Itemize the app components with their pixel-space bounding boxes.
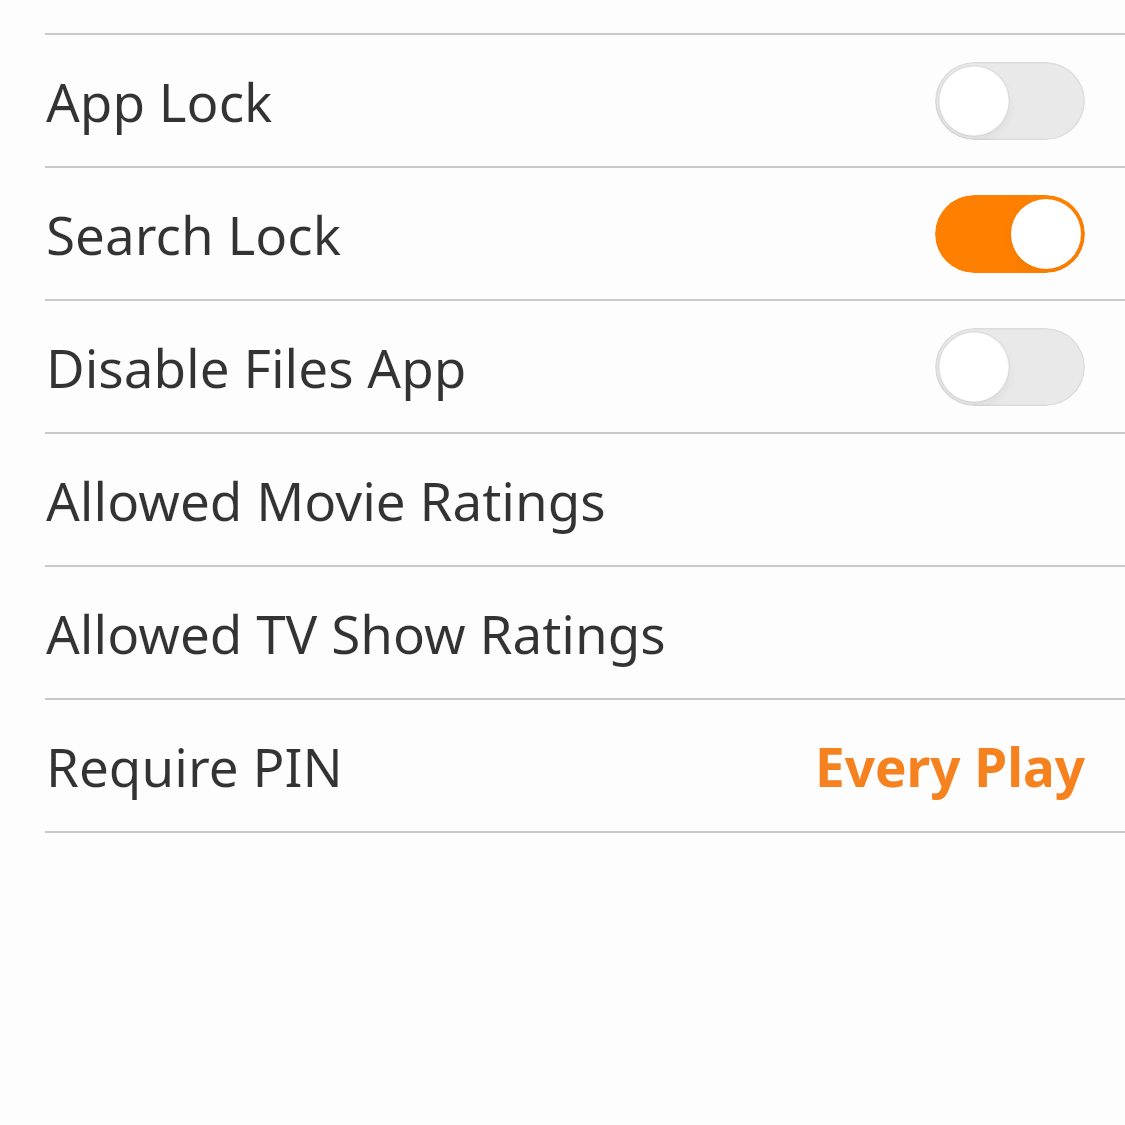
button[interactable]: Disable Files App xyxy=(0,301,1125,432)
button[interactable]: Require PIN xyxy=(0,700,1125,831)
button[interactable]: Allowed Movie Ratings xyxy=(0,434,1125,565)
button[interactable]: App Lock xyxy=(0,35,1125,166)
button[interactable]: Search Lock toggle xyxy=(935,195,1085,273)
staticText: Search Lock xyxy=(46,198,342,270)
staticText: Allowed TV Show Ratings xyxy=(46,597,666,669)
button[interactable]: Disable Files App toggle xyxy=(935,328,1085,406)
button[interactable]: Search Lock xyxy=(0,168,1125,299)
button[interactable]: App Lock toggle xyxy=(935,62,1085,140)
staticText: Disable Files App xyxy=(46,331,467,403)
staticText: Every Play xyxy=(814,730,1085,802)
staticText: Allowed Movie Ratings xyxy=(46,464,606,536)
staticText: App Lock xyxy=(46,65,273,137)
button[interactable]: Allowed TV Show Ratings xyxy=(0,567,1125,698)
staticText: Require PIN xyxy=(46,730,343,802)
